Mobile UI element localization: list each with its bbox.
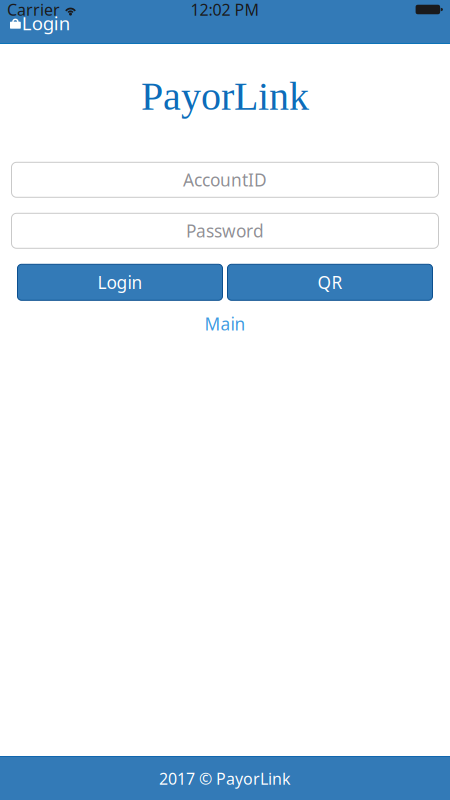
staticText: Password [186, 219, 264, 242]
staticText: 12:02 PM [190, 0, 259, 20]
staticText: PayorLink [141, 74, 309, 118]
staticText: Login [22, 11, 71, 35]
button[interactable]: Main [204, 312, 245, 335]
staticText: AccountID [183, 168, 267, 191]
button[interactable]: QR [227, 264, 432, 300]
button[interactable]: Login [17, 264, 222, 300]
staticText: Carrier [7, 0, 60, 20]
staticText: QR [317, 271, 342, 294]
button[interactable]: Password [11, 213, 438, 248]
staticText: 2017 © PayorLink [159, 768, 291, 789]
staticText: Login [97, 271, 142, 294]
button[interactable]: AccountID [11, 162, 438, 197]
staticText: Main [204, 312, 245, 335]
